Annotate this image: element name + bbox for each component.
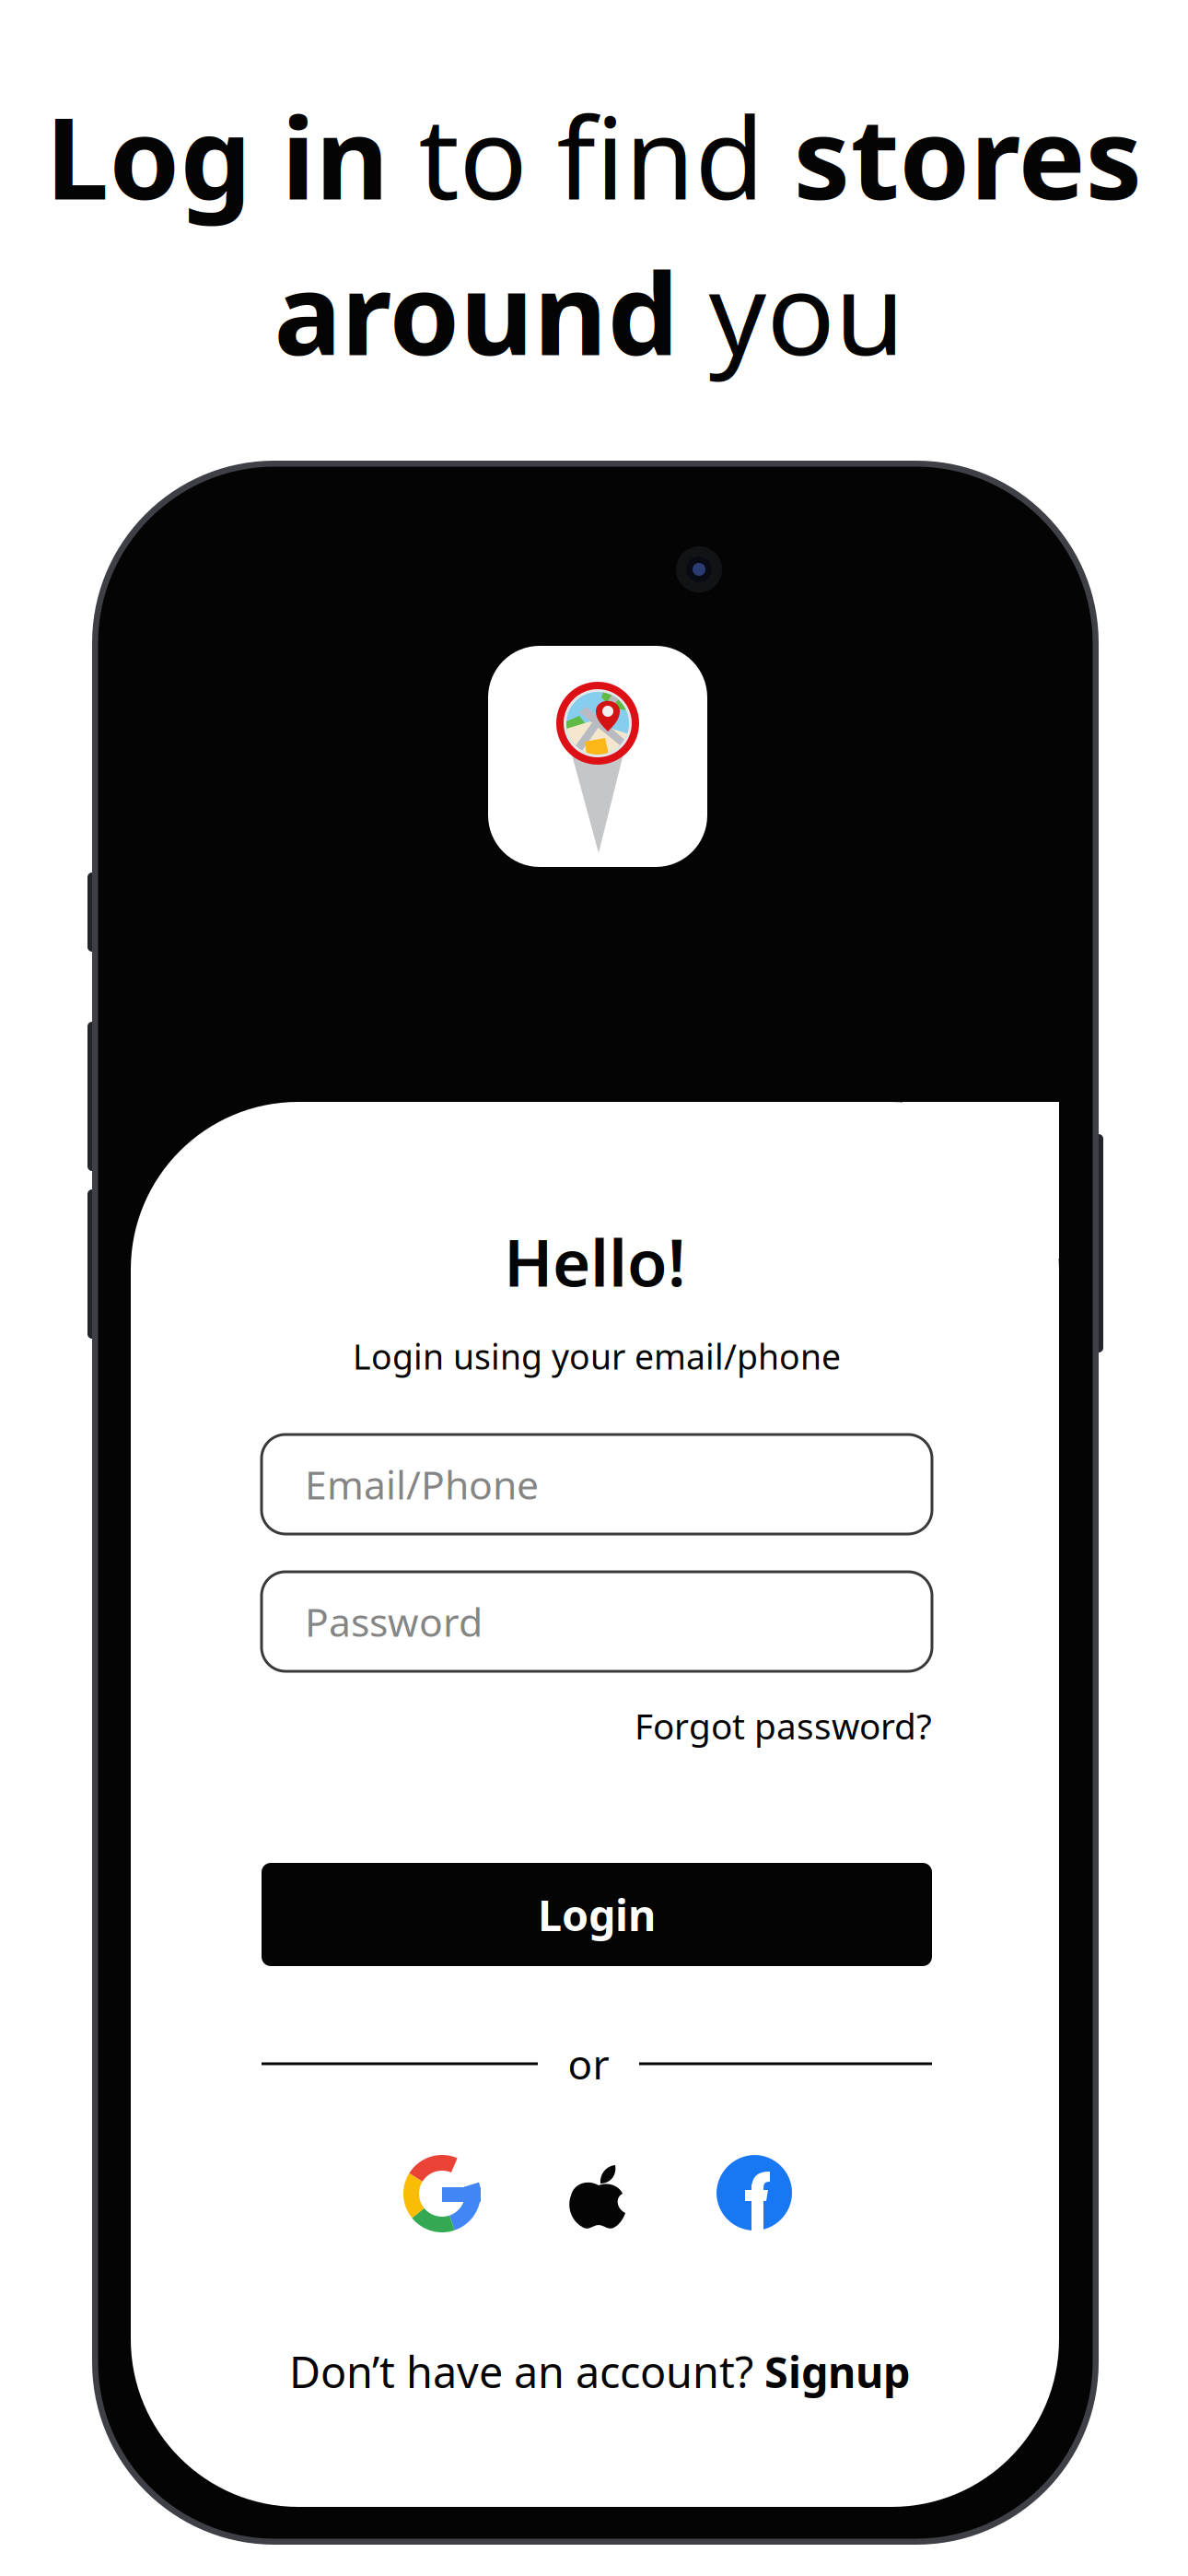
staticText: Hello! <box>504 1218 686 1304</box>
button[interactable]: Sign in with Facebook <box>716 2155 794 2232</box>
staticText: Log in to find stores <box>46 81 1142 231</box>
staticText: Email/Phone <box>305 1458 539 1510</box>
staticText: around you <box>274 236 905 386</box>
staticText: Password <box>305 1595 483 1648</box>
staticText: Forgot password? <box>635 1702 932 1749</box>
button[interactable]: Login <box>262 1863 932 1966</box>
staticText: Login <box>538 1886 656 1943</box>
button[interactable]: Don’t have an account? Signup <box>289 2337 910 2406</box>
button[interactable]: Sign in with Google <box>403 2155 481 2232</box>
button[interactable]: Sign in with Apple <box>560 2155 637 2232</box>
button[interactable]: Forgot password? <box>262 1692 932 1760</box>
staticText: or <box>568 2037 609 2091</box>
staticText: Don’t have an account? Signup <box>289 2343 910 2400</box>
staticText: Login using your email/phone <box>353 1333 841 1379</box>
